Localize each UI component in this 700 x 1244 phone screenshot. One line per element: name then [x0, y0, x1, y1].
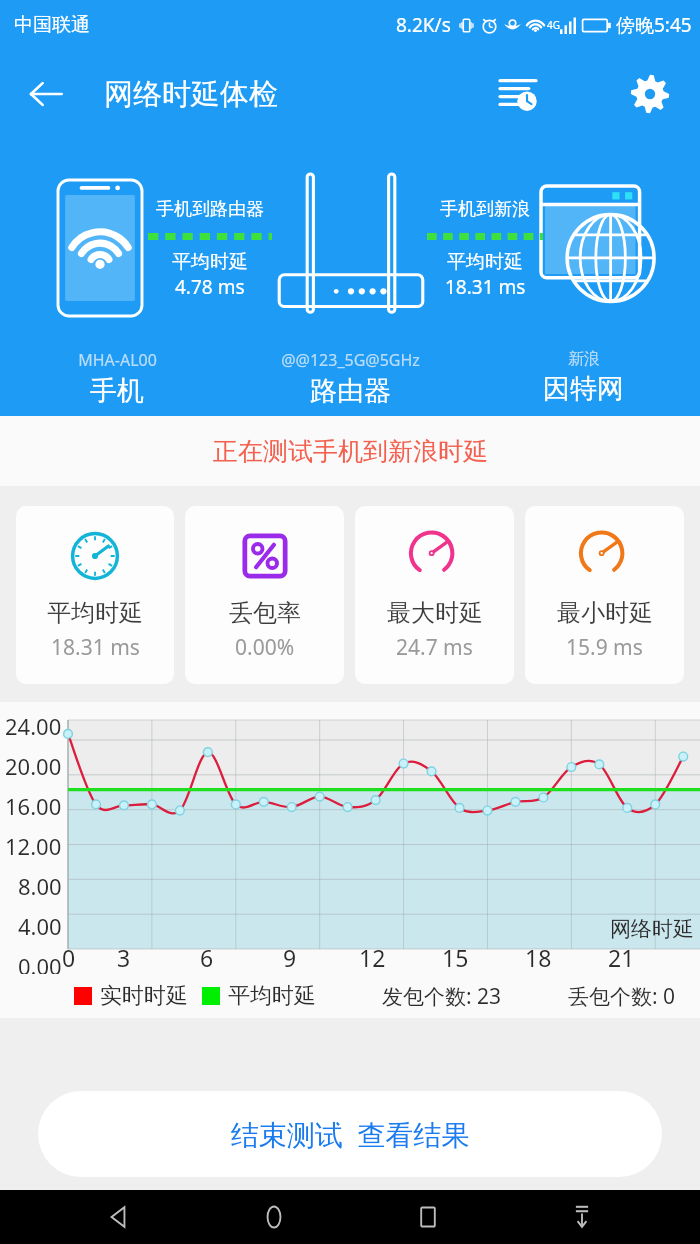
staticText: 实时时延: [100, 982, 188, 1010]
staticText: 路由器: [310, 374, 391, 408]
staticText: 傍晚5:45: [616, 12, 692, 38]
staticText: 平均时延: [172, 250, 248, 274]
staticText: 8.2K/s: [396, 12, 451, 38]
button[interactable]: 丢包率: [185, 506, 344, 684]
button[interactable]: 结束测试 查看结果: [38, 1091, 662, 1177]
staticText: 0.00: [18, 951, 62, 974]
staticText: 0.00%: [235, 633, 295, 662]
staticText: 21: [608, 942, 635, 973]
staticText: 正在测试手机到新浪时延: [213, 436, 488, 467]
staticText: 最大时延: [387, 598, 483, 628]
staticText: 15.9 ms: [566, 633, 643, 662]
staticText: 18.31 ms: [51, 633, 140, 662]
staticText: 4.00: [18, 911, 62, 941]
staticText: 手机: [90, 374, 144, 408]
button[interactable]: Back: [92, 1190, 146, 1244]
button[interactable]: 最小时延: [525, 506, 684, 684]
staticText: 网络时延: [610, 916, 694, 942]
staticText: 18.31 ms: [445, 274, 526, 300]
staticText: 8.00: [18, 871, 62, 901]
staticText: 4.78 ms: [175, 274, 245, 300]
staticText: 新浪: [568, 349, 600, 369]
staticText: @@123_5G@5GHz: [281, 349, 420, 371]
staticText: 6: [200, 942, 214, 973]
button[interactable]: Back: [20, 68, 72, 120]
staticText: 24.7 ms: [396, 633, 473, 662]
staticText: 平均时延: [447, 250, 523, 274]
staticText: 15: [442, 942, 469, 973]
staticText: 24.00: [5, 711, 62, 741]
staticText: 平均时延: [47, 598, 143, 628]
staticText: 16.00: [5, 791, 62, 821]
staticText: 手机到路由器: [156, 198, 264, 221]
staticText: 3: [117, 942, 131, 973]
button[interactable]: History: [490, 66, 546, 122]
button[interactable]: 平均时延: [16, 506, 174, 684]
staticText: 丢包率: [229, 598, 301, 628]
staticText: 发包个数: 23: [382, 982, 502, 1011]
staticText: 因特网: [543, 372, 624, 406]
staticText: 9: [283, 942, 297, 973]
staticText: 0: [62, 942, 76, 973]
staticText: 4G: [547, 18, 560, 32]
staticText: 18: [525, 942, 552, 973]
button[interactable]: 最大时延: [355, 506, 514, 684]
staticText: 平均时延: [228, 982, 316, 1010]
staticText: 结束测试 查看结果: [231, 1115, 470, 1153]
button[interactable]: Hide navigation bar: [555, 1190, 609, 1244]
button[interactable]: Home: [247, 1190, 301, 1244]
staticText: 12: [359, 942, 386, 973]
staticText: MHA-AL00: [78, 349, 157, 371]
staticText: 12.00: [5, 831, 62, 861]
staticText: 最小时延: [557, 598, 653, 628]
staticText: 丢包个数: 0: [568, 982, 676, 1011]
staticText: 手机到新浪: [440, 198, 530, 221]
staticText: 20.00: [5, 751, 62, 781]
button[interactable]: Recents: [401, 1190, 455, 1244]
staticText: 网络时延体检: [104, 76, 278, 113]
button[interactable]: Settings: [622, 66, 678, 122]
staticText: 中国联通: [14, 13, 90, 37]
